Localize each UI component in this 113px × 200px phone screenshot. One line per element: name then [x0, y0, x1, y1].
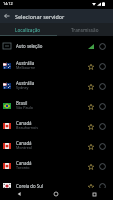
button[interactable]: Recents: [75, 188, 113, 200]
staticText: Selecionar servidor: [15, 13, 65, 20]
button[interactable]: Canadá: [0, 116, 113, 136]
staticText: Coreia do Sul: [16, 183, 44, 189]
button[interactable]: Canadá: [0, 156, 113, 176]
button[interactable]: Back: [0, 9, 14, 23]
button[interactable]: Auto seleção: [0, 36, 113, 56]
staticText: Canadá: [16, 140, 32, 146]
staticText: Canadá: [16, 120, 32, 126]
button[interactable]: Favorite: [86, 62, 95, 71]
staticText: Austrália: [16, 80, 35, 86]
staticText: Beauharnois: [16, 125, 38, 130]
button[interactable]: Select server: [98, 62, 107, 71]
button[interactable]: Select server: [98, 182, 107, 191]
staticText: Toronto: [16, 165, 30, 170]
staticText: Localização: [15, 27, 41, 33]
button[interactable]: Select server: [98, 142, 107, 151]
staticText: Canadá: [16, 160, 32, 166]
staticText: 14:12: [3, 1, 13, 6]
button[interactable]: Favorite: [86, 82, 95, 91]
staticText: Melbourne: [16, 65, 36, 70]
button[interactable]: Favorite: [86, 162, 95, 171]
button[interactable]: Select server: [98, 42, 107, 51]
button[interactable]: Austrália: [0, 56, 113, 76]
button[interactable]: Favorite: [86, 102, 95, 111]
button[interactable]: Favorite: [86, 182, 95, 191]
staticText: Montreal: [16, 145, 32, 150]
staticText: Austrália: [16, 60, 35, 66]
button[interactable]: Signal strength: [86, 42, 95, 51]
button[interactable]: Coreia do Sul: [0, 176, 113, 196]
button[interactable]: Austrália: [0, 76, 113, 96]
button[interactable]: Transmissão: [56, 23, 113, 36]
button[interactable]: Home: [37, 188, 75, 200]
button[interactable]: Canadá: [0, 136, 113, 156]
staticText: Brasil: [16, 100, 28, 106]
button[interactable]: Select server: [98, 82, 107, 91]
button[interactable]: Favorite: [86, 122, 95, 131]
button[interactable]: Localização: [0, 23, 56, 36]
button[interactable]: Brasil: [0, 96, 113, 116]
staticText: Auto seleção: [16, 43, 43, 49]
staticText: Sydney: [16, 85, 29, 90]
button[interactable]: Select server: [98, 122, 107, 131]
button[interactable]: Select server: [98, 102, 107, 111]
button[interactable]: Select server: [98, 162, 107, 171]
staticText: São Paulo: [16, 105, 34, 110]
staticText: Transmissão: [71, 27, 99, 33]
button[interactable]: Favorite: [86, 142, 95, 151]
button[interactable]: Back: [0, 188, 37, 200]
